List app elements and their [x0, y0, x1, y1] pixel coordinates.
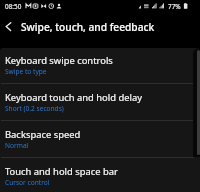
- other: Network status: [138, 2, 166, 11]
- button[interactable]: Keyboard touch and hold delay: [0, 85, 200, 122]
- other: Battery 77 percent: [183, 2, 189, 11]
- button[interactable]: Keyboard swipe controls: [0, 48, 200, 85]
- staticText: Backspace speed: [5, 128, 81, 141]
- staticText: 77%: [168, 2, 181, 11]
- staticText: Short (0.2 seconds): [5, 104, 64, 113]
- button[interactable]: Backspace speed: [0, 122, 200, 159]
- staticText: Keyboard swipe controls: [5, 54, 113, 67]
- staticText: Keyboard touch and hold delay: [5, 91, 142, 104]
- staticText: Cursor control: [5, 178, 50, 187]
- button[interactable]: Touch and hold space bar: [0, 159, 200, 192]
- staticText: Normal: [5, 141, 29, 150]
- staticText: Touch and hold space bar: [5, 165, 118, 178]
- staticText: 08:50: [5, 2, 22, 11]
- other: Notifications: [25, 2, 65, 11]
- staticText: Swipe to type: [5, 67, 47, 76]
- button[interactable]: Navigate up: [2, 20, 15, 33]
- staticText: Swipe, touch, and feedback: [21, 20, 155, 34]
